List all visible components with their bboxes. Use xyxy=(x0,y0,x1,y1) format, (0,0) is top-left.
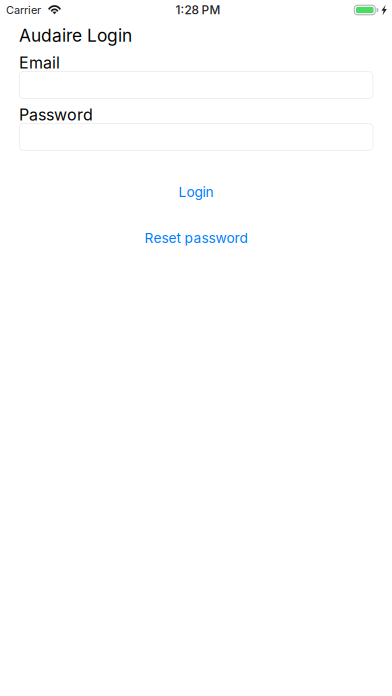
staticText: 1:28 PM xyxy=(175,3,220,17)
button[interactable]: Email xyxy=(19,71,373,99)
staticText: Audaire Login xyxy=(19,25,132,46)
staticText: Password xyxy=(19,105,93,124)
staticText: Email xyxy=(19,53,60,72)
staticText: Carrier xyxy=(6,3,41,17)
button[interactable]: Login xyxy=(0,183,392,201)
button[interactable]: Reset password xyxy=(0,229,392,247)
button[interactable]: Password xyxy=(19,123,373,151)
staticText: Reset password xyxy=(144,230,247,246)
staticText: Login xyxy=(178,184,213,200)
